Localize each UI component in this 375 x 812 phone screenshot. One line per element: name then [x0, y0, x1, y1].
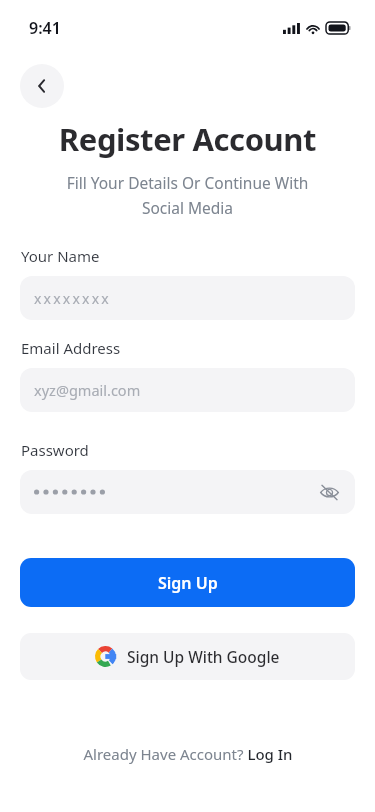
staticText: Password	[21, 440, 375, 460]
staticText: Sign Up With Google	[127, 646, 280, 667]
button[interactable]: Sign Up With Google	[20, 633, 355, 680]
button[interactable]: xxxxxxxx	[20, 276, 355, 320]
staticText: xyz@gmail.com	[34, 380, 141, 400]
staticText: Register Account	[0, 118, 375, 160]
staticText: Email Address	[21, 338, 375, 358]
staticText: Fill Your Details Or Continue With Socia…	[34, 172, 341, 218]
button[interactable]: Show password	[20, 470, 355, 514]
button[interactable]: Already Have Account? Log In	[0, 744, 375, 764]
staticText: xxxxxxxx	[34, 289, 111, 308]
staticText: Already Have Account? Log In	[83, 744, 293, 764]
staticText: Your Name	[21, 246, 375, 266]
button[interactable]: xyz@gmail.com	[20, 368, 355, 412]
staticText: 9:41	[29, 17, 61, 39]
button[interactable]: Show password	[317, 480, 341, 504]
staticText: Sign Up	[158, 572, 218, 594]
button[interactable]: Sign Up	[20, 558, 355, 607]
button[interactable]: Back	[20, 64, 64, 108]
